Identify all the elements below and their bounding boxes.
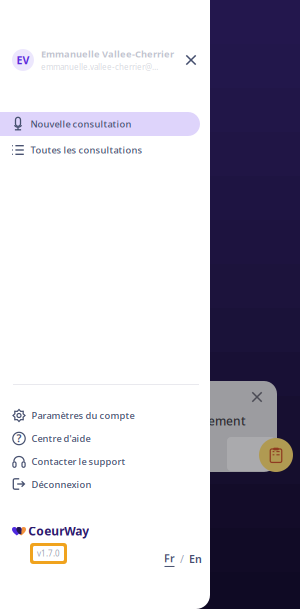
- staticText: Fr: [164, 551, 175, 565]
- staticText: EV: [16, 53, 29, 67]
- button[interactable]: Toutes les consultations: [0, 138, 200, 162]
- button[interactable]: Déconnexion: [1, 473, 211, 496]
- button[interactable]: Contacter le support: [1, 450, 211, 473]
- button[interactable]: Fermer la carte: [245, 385, 269, 409]
- staticText: tement: [203, 413, 246, 429]
- button[interactable]: Nouveau document: [259, 438, 293, 472]
- button[interactable]: ?: [1, 427, 211, 450]
- staticText: Toutes les consultations: [30, 144, 142, 156]
- staticText: v1.7.0: [37, 548, 60, 559]
- staticText: Emmanuelle Vallee-Cherrier: [41, 48, 174, 60]
- staticText: Déconnexion: [31, 478, 91, 491]
- staticText: emmanuelle.vallee-cherrier@…: [41, 62, 158, 72]
- staticText: /: [180, 552, 184, 566]
- button[interactable]: En: [187, 549, 204, 569]
- staticText: Paramètres du compte: [31, 409, 134, 422]
- button[interactable]: v1.7.0: [30, 543, 67, 564]
- button[interactable]: Fr: [162, 548, 177, 570]
- staticText: CoeurWay: [28, 523, 89, 539]
- button[interactable]: Nouvelle consultation: [0, 112, 200, 136]
- staticText: Centre d'aide: [31, 432, 90, 445]
- staticText: Contacter le support: [31, 455, 125, 468]
- button[interactable]: Fermer le menu: [178, 47, 204, 73]
- staticText: En: [189, 552, 202, 566]
- staticText: ?: [16, 431, 21, 445]
- button[interactable]: Paramètres du compte: [1, 404, 211, 427]
- staticText: Nouvelle consultation: [30, 118, 131, 130]
